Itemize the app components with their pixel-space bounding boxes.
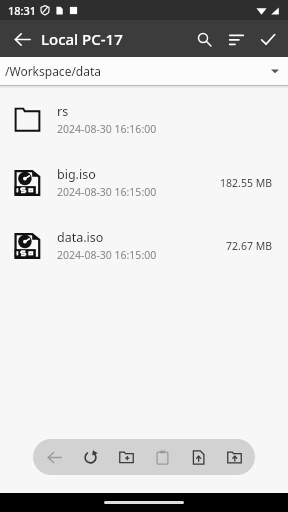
staticText: 182.55 MB — [220, 176, 272, 190]
button[interactable]: Search — [188, 23, 220, 55]
button[interactable]: data.iso — [0, 214, 288, 277]
staticText: big.iso — [57, 166, 96, 183]
button[interactable]: rs — [0, 88, 288, 151]
staticText: 2024-08-30 16:15:00 — [57, 248, 157, 262]
staticText: data.iso — [57, 229, 104, 246]
staticText: 72.67 MB — [226, 239, 272, 253]
button[interactable]: big.iso — [0, 151, 288, 214]
staticText: 2024-08-30 16:16:00 — [57, 122, 157, 136]
button[interactable]: Refresh — [75, 442, 105, 472]
staticText: Local PC-17 — [41, 29, 123, 49]
button[interactable]: /Workspace/data — [0, 57, 288, 85]
staticText: 18:31 — [8, 3, 37, 18]
staticText: rs — [57, 103, 69, 120]
button[interactable]: Confirm — [252, 23, 284, 55]
button[interactable]: Paste — [147, 442, 177, 472]
button[interactable]: Back — [39, 442, 69, 472]
button[interactable]: New folder — [111, 442, 141, 472]
button[interactable]: Sort — [220, 23, 252, 55]
staticText: 2024-08-30 16:15:00 — [57, 185, 157, 199]
button[interactable]: Upload folder — [219, 442, 249, 472]
button[interactable]: Back — [6, 23, 38, 55]
button[interactable]: Upload file — [183, 442, 213, 472]
staticText: /Workspace/data — [5, 63, 102, 79]
